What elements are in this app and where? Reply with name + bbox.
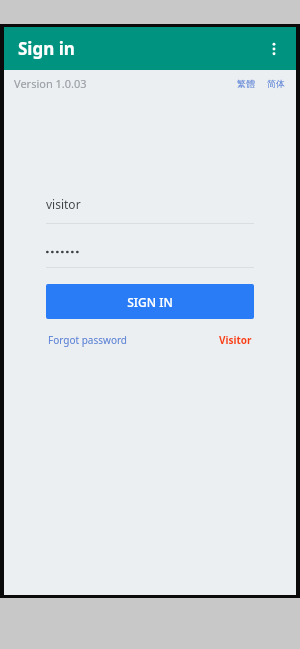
staticText: 简体 bbox=[267, 78, 285, 89]
staticText: Visitor bbox=[219, 333, 252, 347]
staticText: SIGN IN bbox=[127, 294, 173, 310]
button[interactable]: 简体 bbox=[264, 76, 288, 91]
staticText: 繁體 bbox=[237, 78, 255, 89]
button[interactable]: SIGN IN bbox=[46, 284, 254, 319]
button[interactable]: More options bbox=[256, 31, 292, 67]
button[interactable]: visitor bbox=[46, 192, 254, 224]
staticText: Forgot password bbox=[48, 333, 128, 347]
button[interactable]: 繁體 bbox=[234, 76, 258, 91]
staticText: Version 1.0.03 bbox=[14, 76, 87, 91]
staticText: visitor bbox=[46, 196, 81, 212]
button[interactable] bbox=[46, 241, 254, 268]
staticText: Sign in bbox=[18, 37, 75, 60]
button[interactable]: Forgot password bbox=[46, 329, 130, 351]
button[interactable]: Visitor bbox=[217, 329, 254, 351]
